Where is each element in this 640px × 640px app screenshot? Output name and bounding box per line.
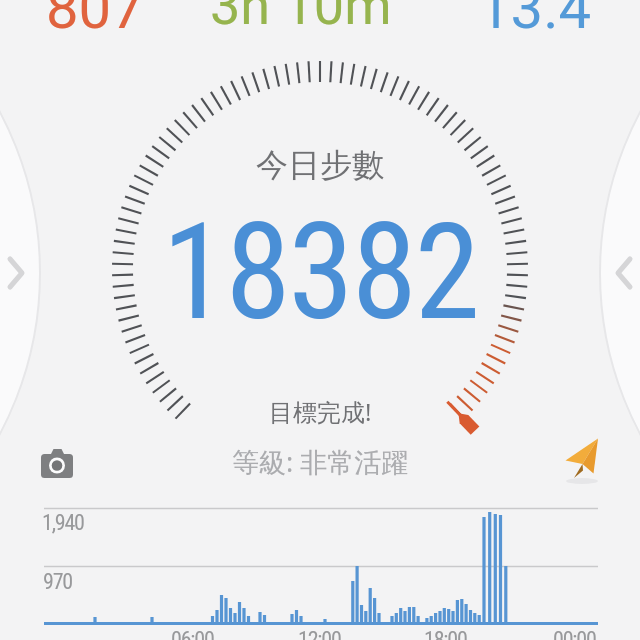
button[interactable] [600,200,640,350]
staticText: 970 [43,569,72,595]
staticText: 12:00 [298,627,341,640]
button[interactable]: 13.4 [475,0,595,54]
staticText: 18:00 [424,627,467,640]
staticText: 18382 [162,195,478,351]
staticText: 00:00 [553,627,596,640]
button[interactable] [0,200,40,350]
button[interactable]: 807 [35,0,155,54]
button[interactable] [556,430,608,486]
button[interactable]: 3h 10m [171,0,431,54]
staticText: 1,940 [42,510,84,536]
staticText: 目標完成! [269,395,372,428]
staticText: 等級: 非常活躍 [232,443,409,480]
staticText: 13.4 [478,0,592,42]
button[interactable] [31,442,83,488]
staticText: 06:00 [171,627,214,640]
staticText: 807 [46,0,144,42]
staticText: 今日步數 [256,145,384,185]
staticText: 3h 10m [210,0,392,37]
